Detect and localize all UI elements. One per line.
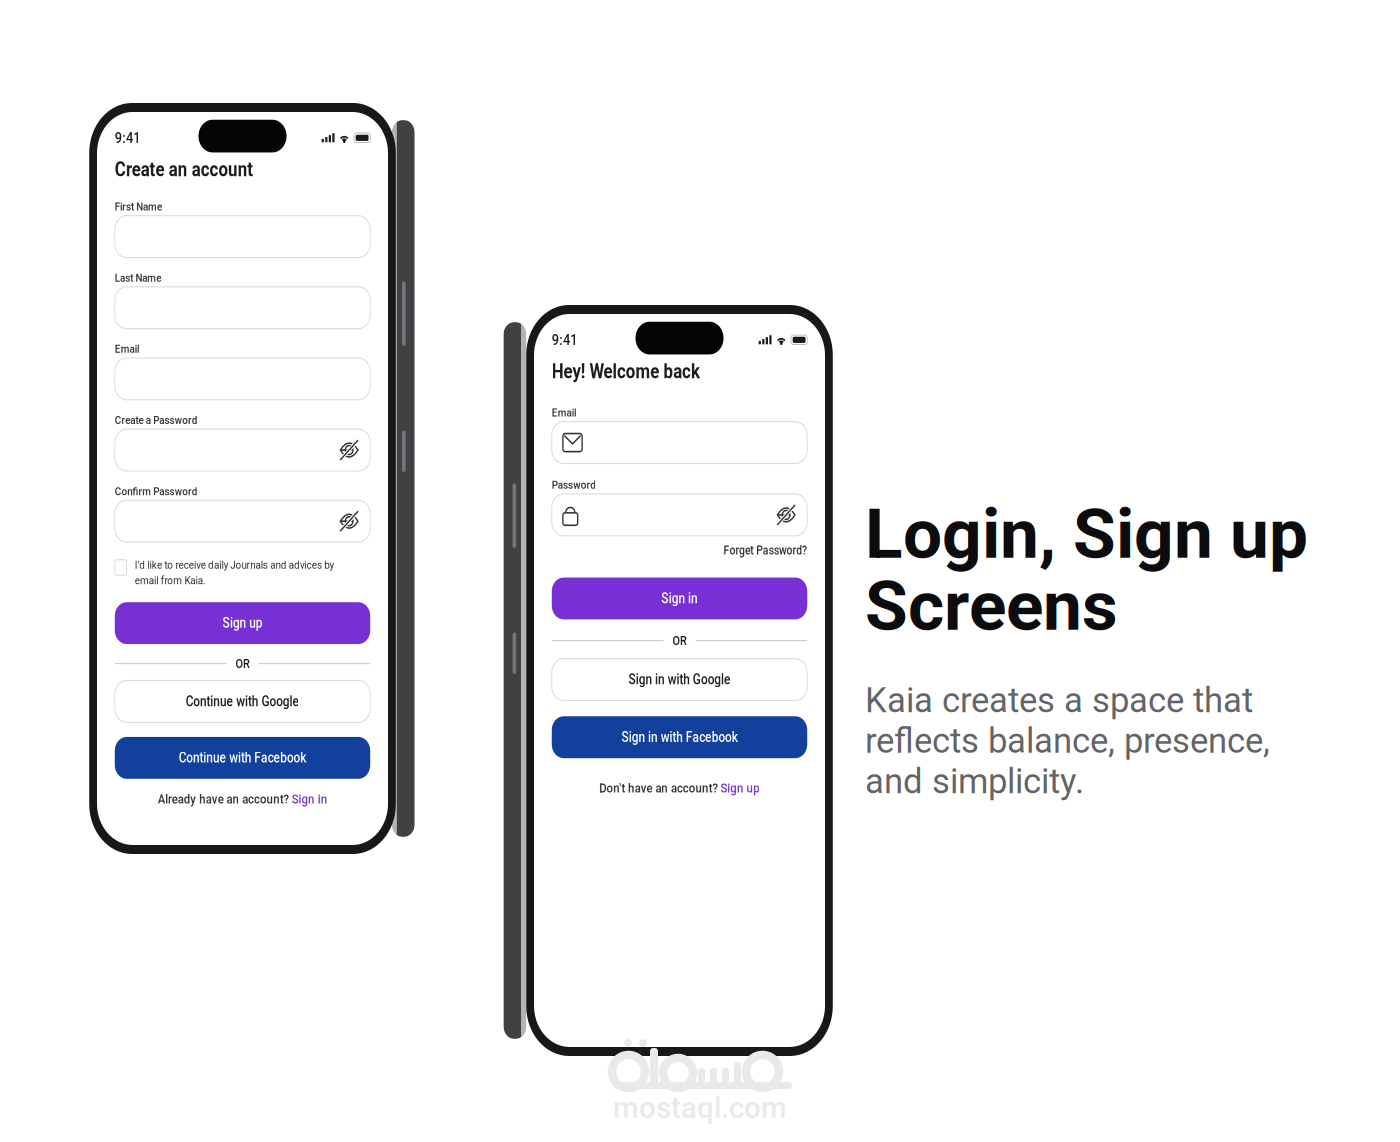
staticText: I'd like to receive daily Journals and a… [151, 632, 420, 648]
staticText: Forget Password? [793, 582, 906, 599]
staticText: Login, Sign up [865, 493, 1308, 575]
staticText: Email [561, 422, 594, 438]
button[interactable]: Sign up [789, 858, 842, 876]
button[interactable]: I'd like to receive daily Journals and a… [124, 632, 469, 668]
staticText: Hey! Welcome back [561, 369, 761, 396]
button[interactable]: Show password [864, 536, 891, 562]
button[interactable]: Sign up [124, 683, 469, 732]
staticText: Sign in with Google [664, 731, 802, 750]
staticText: Confirm Password [124, 546, 236, 562]
staticText: Password [561, 506, 621, 522]
button[interactable]: Continue with Google [124, 774, 469, 823]
staticText: email from Kaia. [151, 650, 247, 666]
staticText: mostaql.com [613, 1091, 787, 1125]
staticText: Sign in [709, 637, 758, 655]
button[interactable]: Sign in with Facebook [561, 783, 906, 832]
staticText: Continue with Google [220, 789, 373, 808]
staticText: Screens [865, 565, 1118, 647]
staticText: 9:41 [561, 335, 596, 356]
button[interactable]: Continue with Facebook [124, 840, 469, 889]
staticText: 9:41 [124, 133, 159, 154]
staticText: OR [287, 746, 306, 763]
staticText: Create a Password [124, 464, 236, 479]
button[interactable]: Sign in with Google [561, 716, 906, 765]
staticText: and simplicity. [865, 761, 1084, 802]
button[interactable]: Forget Password? [793, 581, 906, 599]
staticText: Create an account [124, 167, 311, 194]
staticText: reflects balance, presence, [865, 721, 1270, 761]
staticText: Kaia creates a space that [865, 680, 1253, 721]
staticText: Sign up [269, 698, 323, 717]
button[interactable]: Sign in [561, 622, 906, 670]
staticText: Sign up [789, 858, 842, 876]
staticText: OR [724, 686, 743, 704]
